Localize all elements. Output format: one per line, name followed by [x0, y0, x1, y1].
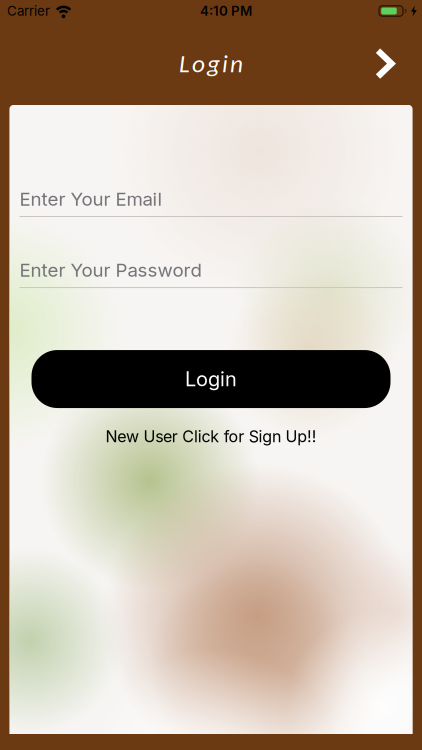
button[interactable]: Enter Your Email — [19, 188, 402, 217]
button[interactable]: Login — [31, 350, 390, 408]
staticText: Enter Your Password — [19, 259, 201, 281]
button[interactable]: Enter Your Password — [19, 259, 402, 288]
staticText: Carrier — [7, 3, 50, 19]
staticText: 4:10 PM — [200, 3, 252, 19]
button[interactable]: New User Click for Sign Up!! — [105, 427, 317, 446]
button[interactable]: Next — [376, 48, 422, 78]
staticText: Enter Your Email — [19, 188, 162, 210]
staticText: New User Click for Sign Up!! — [105, 427, 317, 446]
staticText: Login — [185, 367, 237, 391]
staticText: Login — [179, 48, 243, 79]
